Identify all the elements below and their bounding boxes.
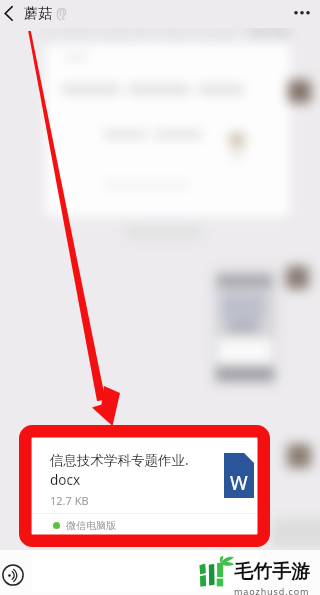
button[interactable]: Back [0,0,24,28]
staticText: 信息技术学科专题作业. docx [50,451,189,489]
staticText: 12.7 KB [50,493,89,508]
staticText: 蘑菇 [24,5,52,23]
staticText: W [230,470,248,496]
button[interactable]: Voice input [0,562,26,588]
button[interactable]: 信息技术学科专题作业. docx [32,431,260,539]
staticText: maozhusd.com [234,585,310,595]
button[interactable]: More options [288,0,320,28]
staticText: 微信电脑版 [66,519,116,532]
staticText: 毛竹手游 [234,560,310,584]
